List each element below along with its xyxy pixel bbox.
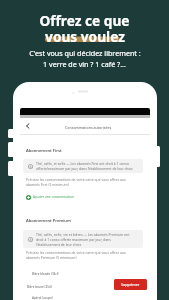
- staticText: C'est vous qui décidez librement :: [29, 48, 141, 58]
- staticText: Apérol (coupe): [32, 296, 53, 300]
- staticText: droit à 1 conso offerte maximum par jour…: [36, 237, 111, 242]
- staticText: Bière blonde (33cl): [32, 272, 59, 276]
- staticText: abonnés First (5 minimum): [26, 182, 69, 187]
- staticText: 1 verre de vin ? 1 café ?...: [43, 59, 126, 69]
- button[interactable]: Supprimer: [114, 279, 147, 290]
- staticText: abonnés Premium (5 minimum): [26, 255, 77, 260]
- staticText: Thé, cafés, et softs — Les abonnés First…: [36, 161, 129, 166]
- staticText: Ajouter une consommation: [33, 195, 74, 199]
- staticText: Abonnement First: [26, 148, 62, 154]
- button[interactable]: Ajouter une consommation: [26, 193, 74, 201]
- staticText: offerte/maximum par jour, dans l'établis…: [36, 166, 133, 171]
- staticText: Précisez les consommations de votre cart…: [26, 250, 126, 255]
- staticText: Consommations autorisées: [65, 125, 112, 130]
- staticText: Thé, cafés, softs, vin et bières — Les a…: [36, 232, 130, 237]
- staticText: Bière brune (25cl): [27, 285, 53, 289]
- staticText: l'établissement de leur choix: [36, 242, 82, 247]
- staticText: Supprimer: [121, 282, 140, 287]
- staticText: Abonnement Premium: [26, 218, 71, 224]
- button[interactable]: Back: [20, 118, 150, 134]
- staticText: Offrez ce que: [39, 11, 130, 30]
- staticText: Précisez les consommations de votre cart…: [26, 177, 126, 182]
- staticText: vous voulez: [45, 27, 125, 46]
